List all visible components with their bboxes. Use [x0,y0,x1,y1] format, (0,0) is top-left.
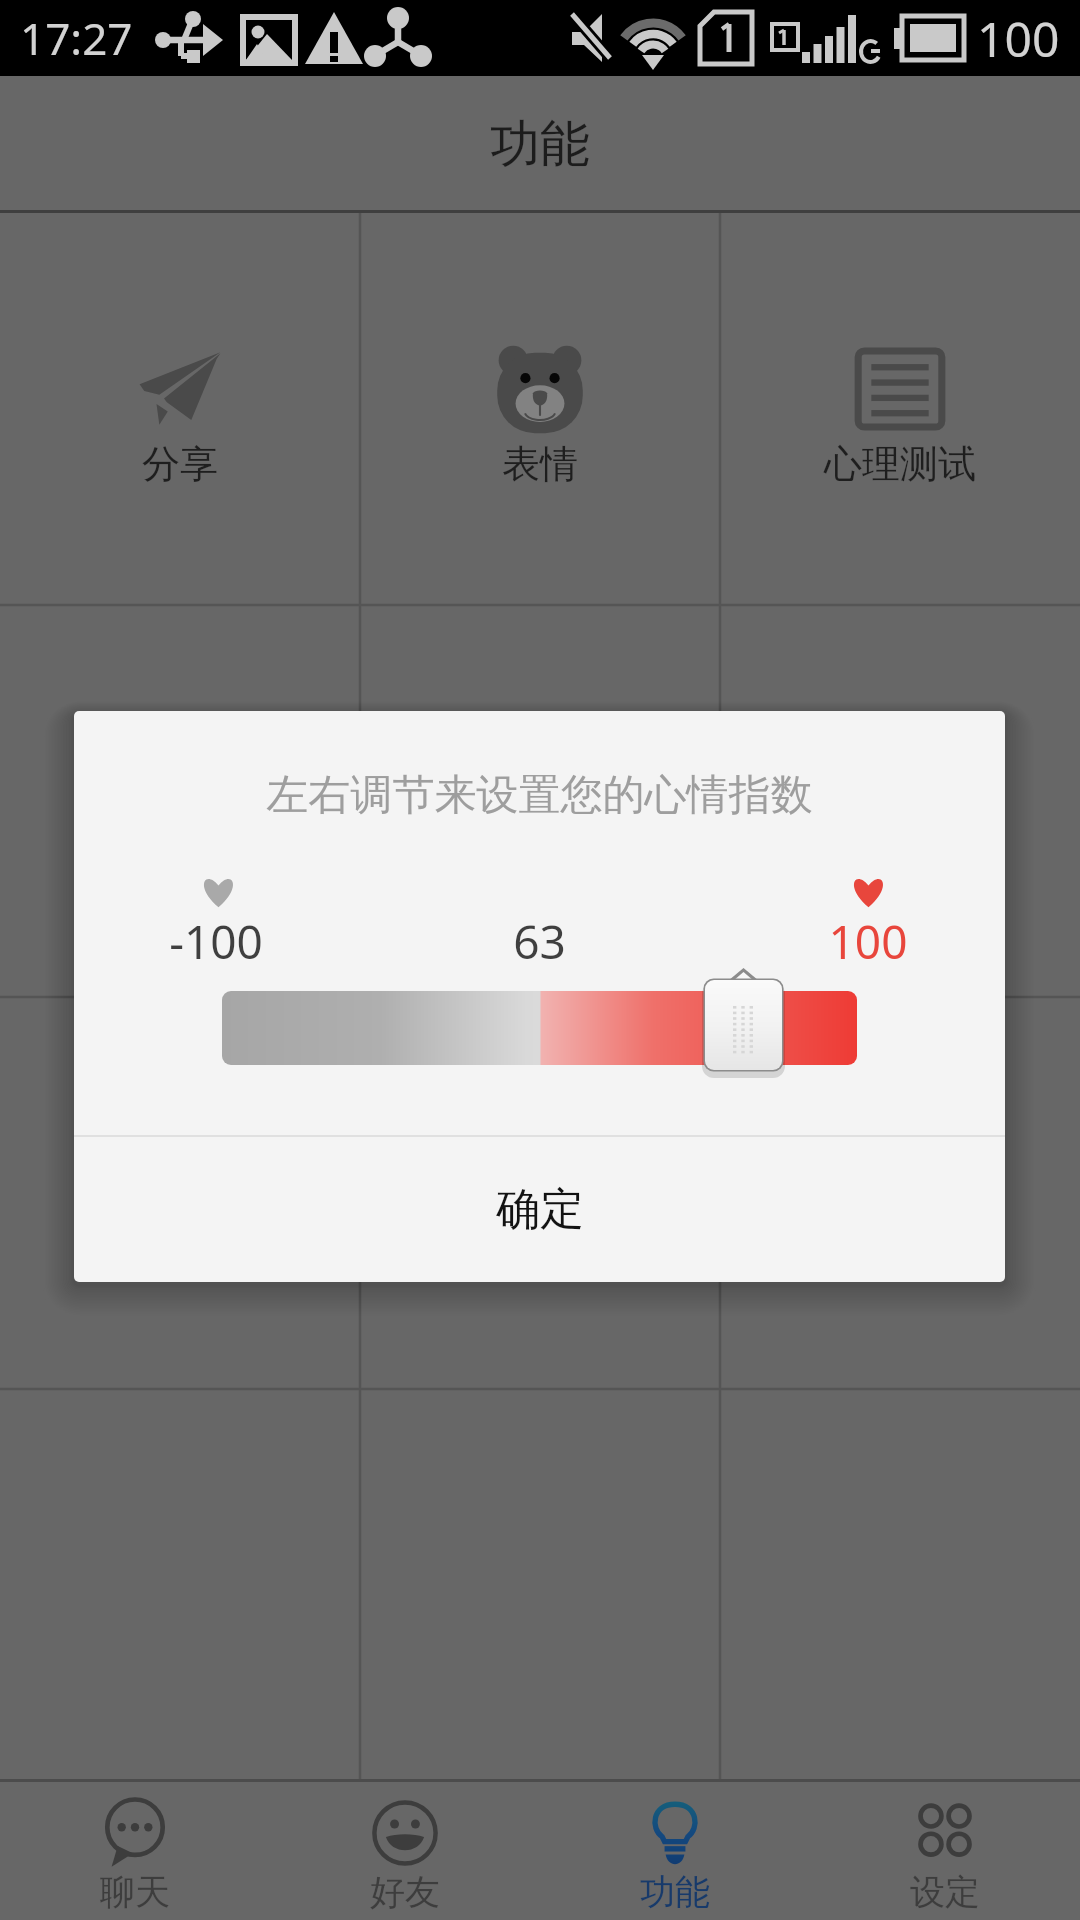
staticText: 表情 [502,440,578,488]
button[interactable]: Mood slider [74,980,1005,1106]
staticText: 确定 [496,1182,584,1237]
button[interactable]: 好友 [270,1782,540,1920]
staticText: 好友 [370,1870,440,1914]
staticText: 63 [74,910,1005,973]
staticText: 功能 [640,1870,710,1914]
button[interactable]: 设定 [810,1782,1080,1920]
staticText: 17:27 [20,8,133,68]
staticText: 100 [977,6,1060,71]
button[interactable]: 分享 [0,213,360,605]
button[interactable]: 确定 [74,1137,1005,1282]
staticText: 分享 [142,440,218,488]
button[interactable]: 表情 [360,213,720,605]
staticText: -100 [156,910,276,973]
button[interactable]: 聊天 [0,1782,270,1920]
staticText: 设定 [910,1870,980,1914]
staticText: 100 [808,910,928,973]
staticText: 功能 [490,113,590,176]
staticText: 心理测试 [824,440,976,488]
staticText: 左右调节来设置您的心情指数 [74,769,1005,822]
button[interactable]: 心理测试 [720,213,1080,605]
staticText: 聊天 [100,1870,170,1914]
button[interactable]: 功能 [540,1782,810,1920]
